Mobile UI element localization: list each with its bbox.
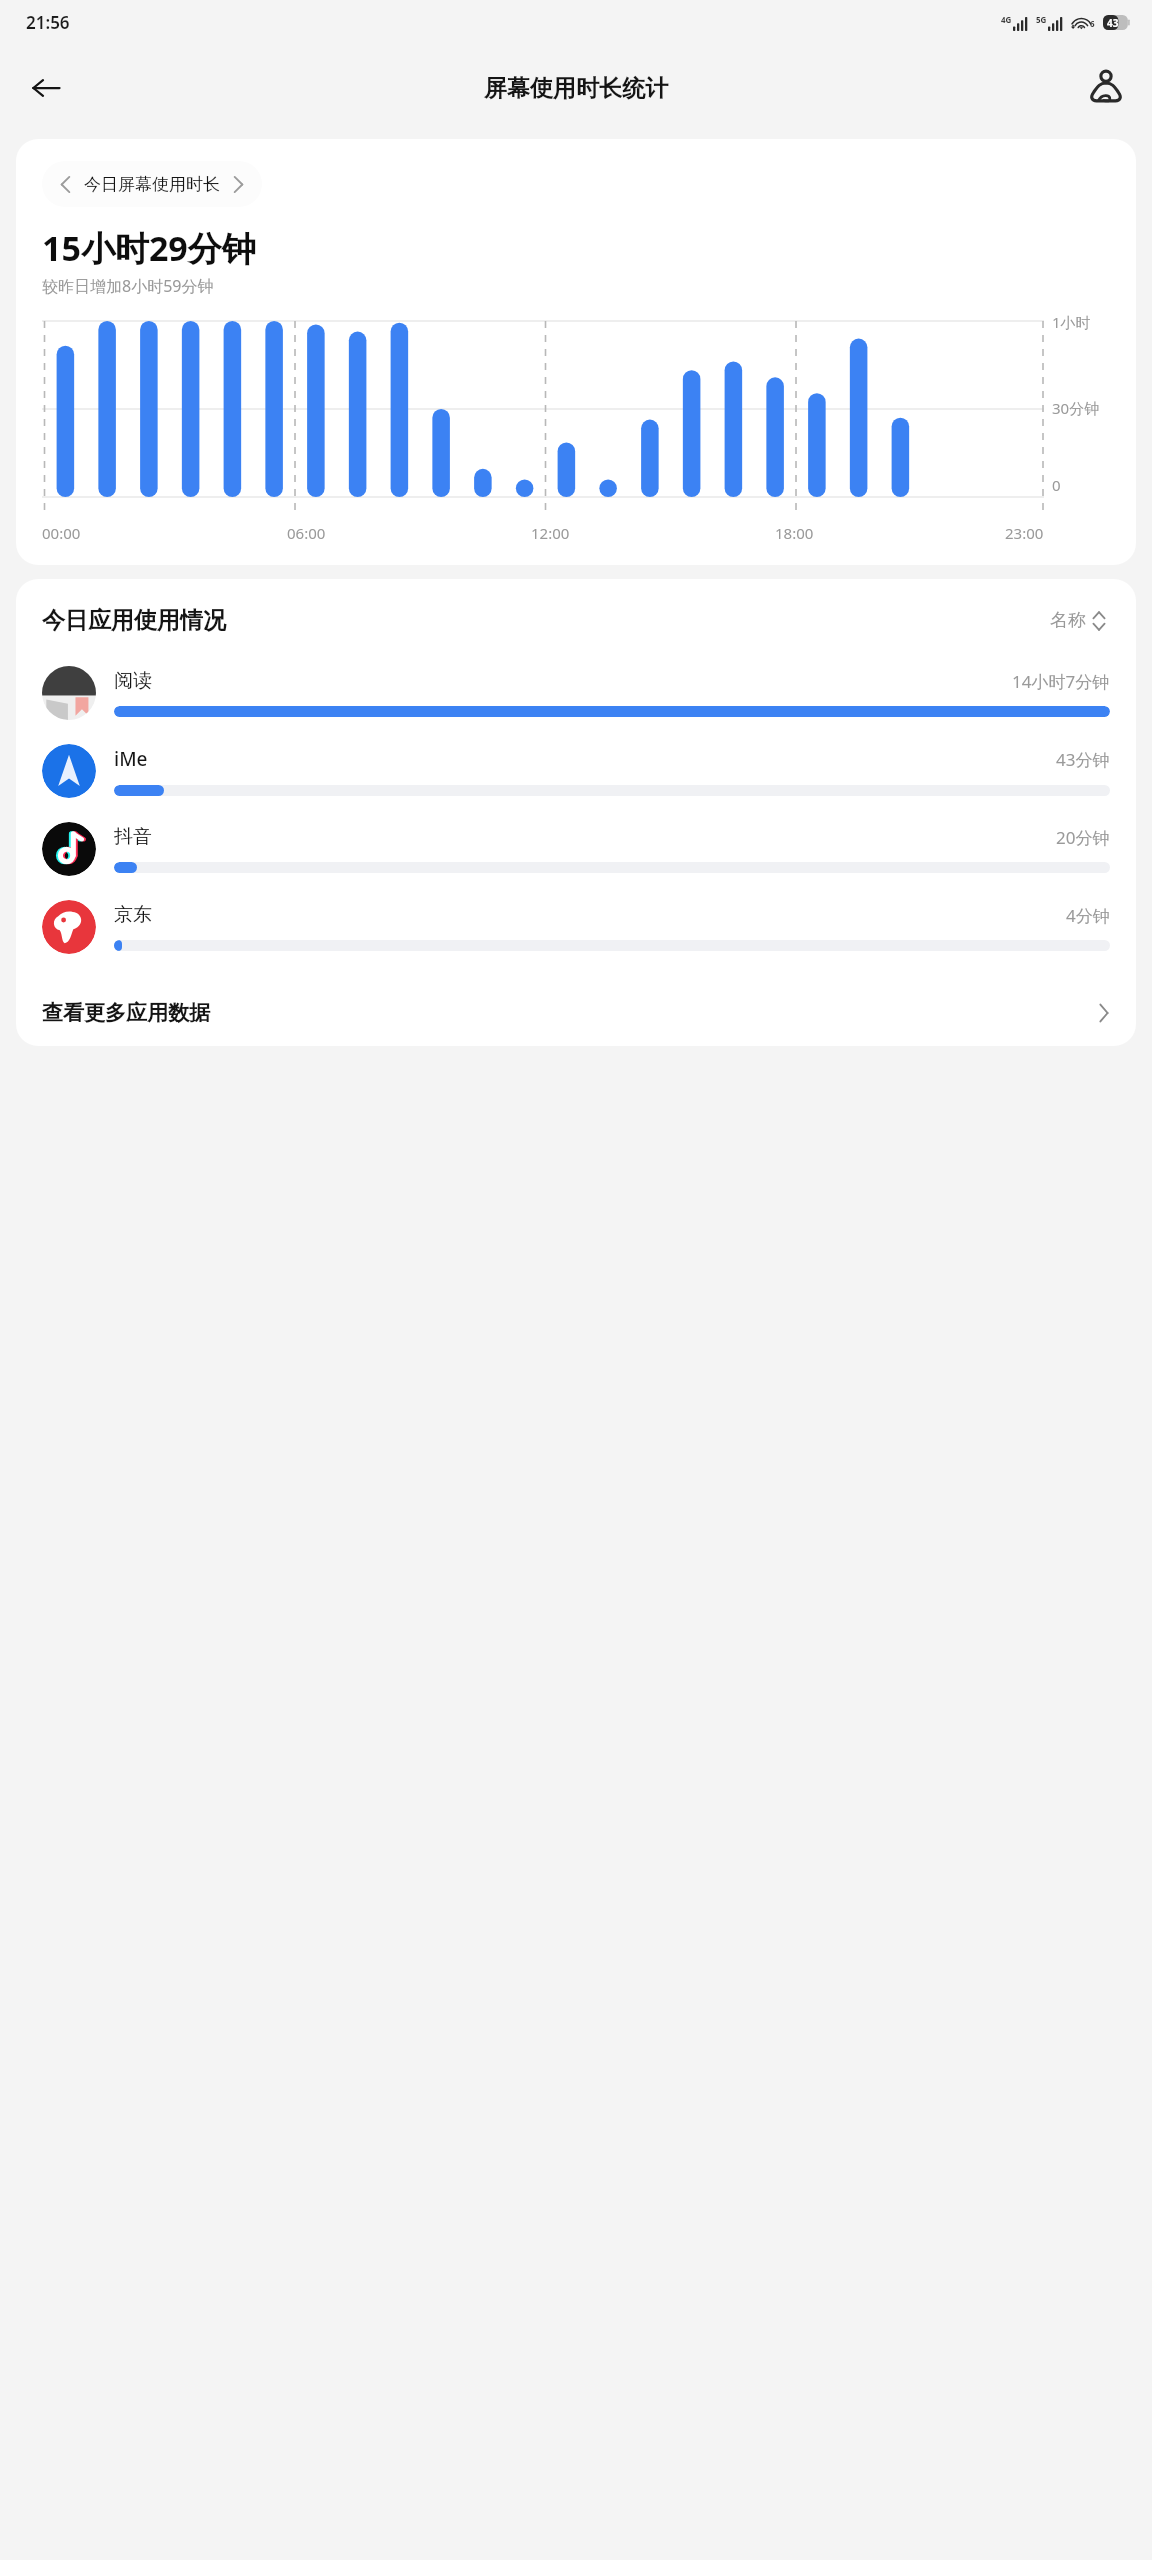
staticText: 5G — [1036, 14, 1047, 25]
button[interactable]: 抖音 — [16, 810, 1136, 888]
button[interactable]: 阅读 — [16, 654, 1136, 732]
staticText: 14小时7分钟 — [1012, 670, 1110, 693]
staticText: 1小时 — [1052, 312, 1091, 332]
staticText: 06:00 — [287, 523, 326, 543]
staticText: 18:00 — [775, 523, 814, 543]
button[interactable]: 名称 — [1046, 605, 1110, 636]
staticText: 4分钟 — [1066, 904, 1110, 927]
staticText: 阅读 — [114, 669, 152, 693]
staticText: 6 — [1090, 18, 1095, 29]
button[interactable]: 查看更多应用数据 — [16, 990, 1136, 1036]
staticText: 今日应用使用情况 — [42, 606, 226, 635]
button[interactable]: 京东 — [16, 888, 1136, 966]
staticText: 30分钟 — [1052, 398, 1100, 418]
staticText: 43 — [1107, 16, 1119, 30]
staticText: 4G — [1001, 14, 1012, 25]
staticText: 较昨日增加8小时59分钟 — [42, 275, 214, 297]
button[interactable]: iMe — [16, 732, 1136, 810]
staticText: 京东 — [114, 903, 152, 927]
button[interactable]: 专注模式 — [1078, 60, 1134, 116]
staticText: 15小时29分钟 — [42, 225, 256, 271]
staticText: iMe — [114, 746, 148, 772]
staticText: 00:00 — [42, 523, 81, 543]
staticText: 名称 — [1050, 609, 1086, 632]
staticText: 今日屏幕使用时长 — [84, 174, 220, 195]
staticText: 屏幕使用时长统计 — [484, 74, 668, 103]
staticText: 0 — [1052, 475, 1061, 495]
staticText: 43分钟 — [1056, 748, 1110, 771]
staticText: 21:56 — [26, 11, 70, 34]
staticText: 抖音 — [114, 825, 152, 849]
staticText: 20分钟 — [1056, 826, 1110, 849]
button[interactable]: 今日屏幕使用时长 — [42, 161, 262, 207]
button[interactable]: 返回 — [18, 60, 74, 116]
staticText: 12:00 — [531, 523, 570, 543]
staticText: 查看更多应用数据 — [42, 1000, 210, 1026]
staticText: 23:00 — [1005, 523, 1044, 543]
